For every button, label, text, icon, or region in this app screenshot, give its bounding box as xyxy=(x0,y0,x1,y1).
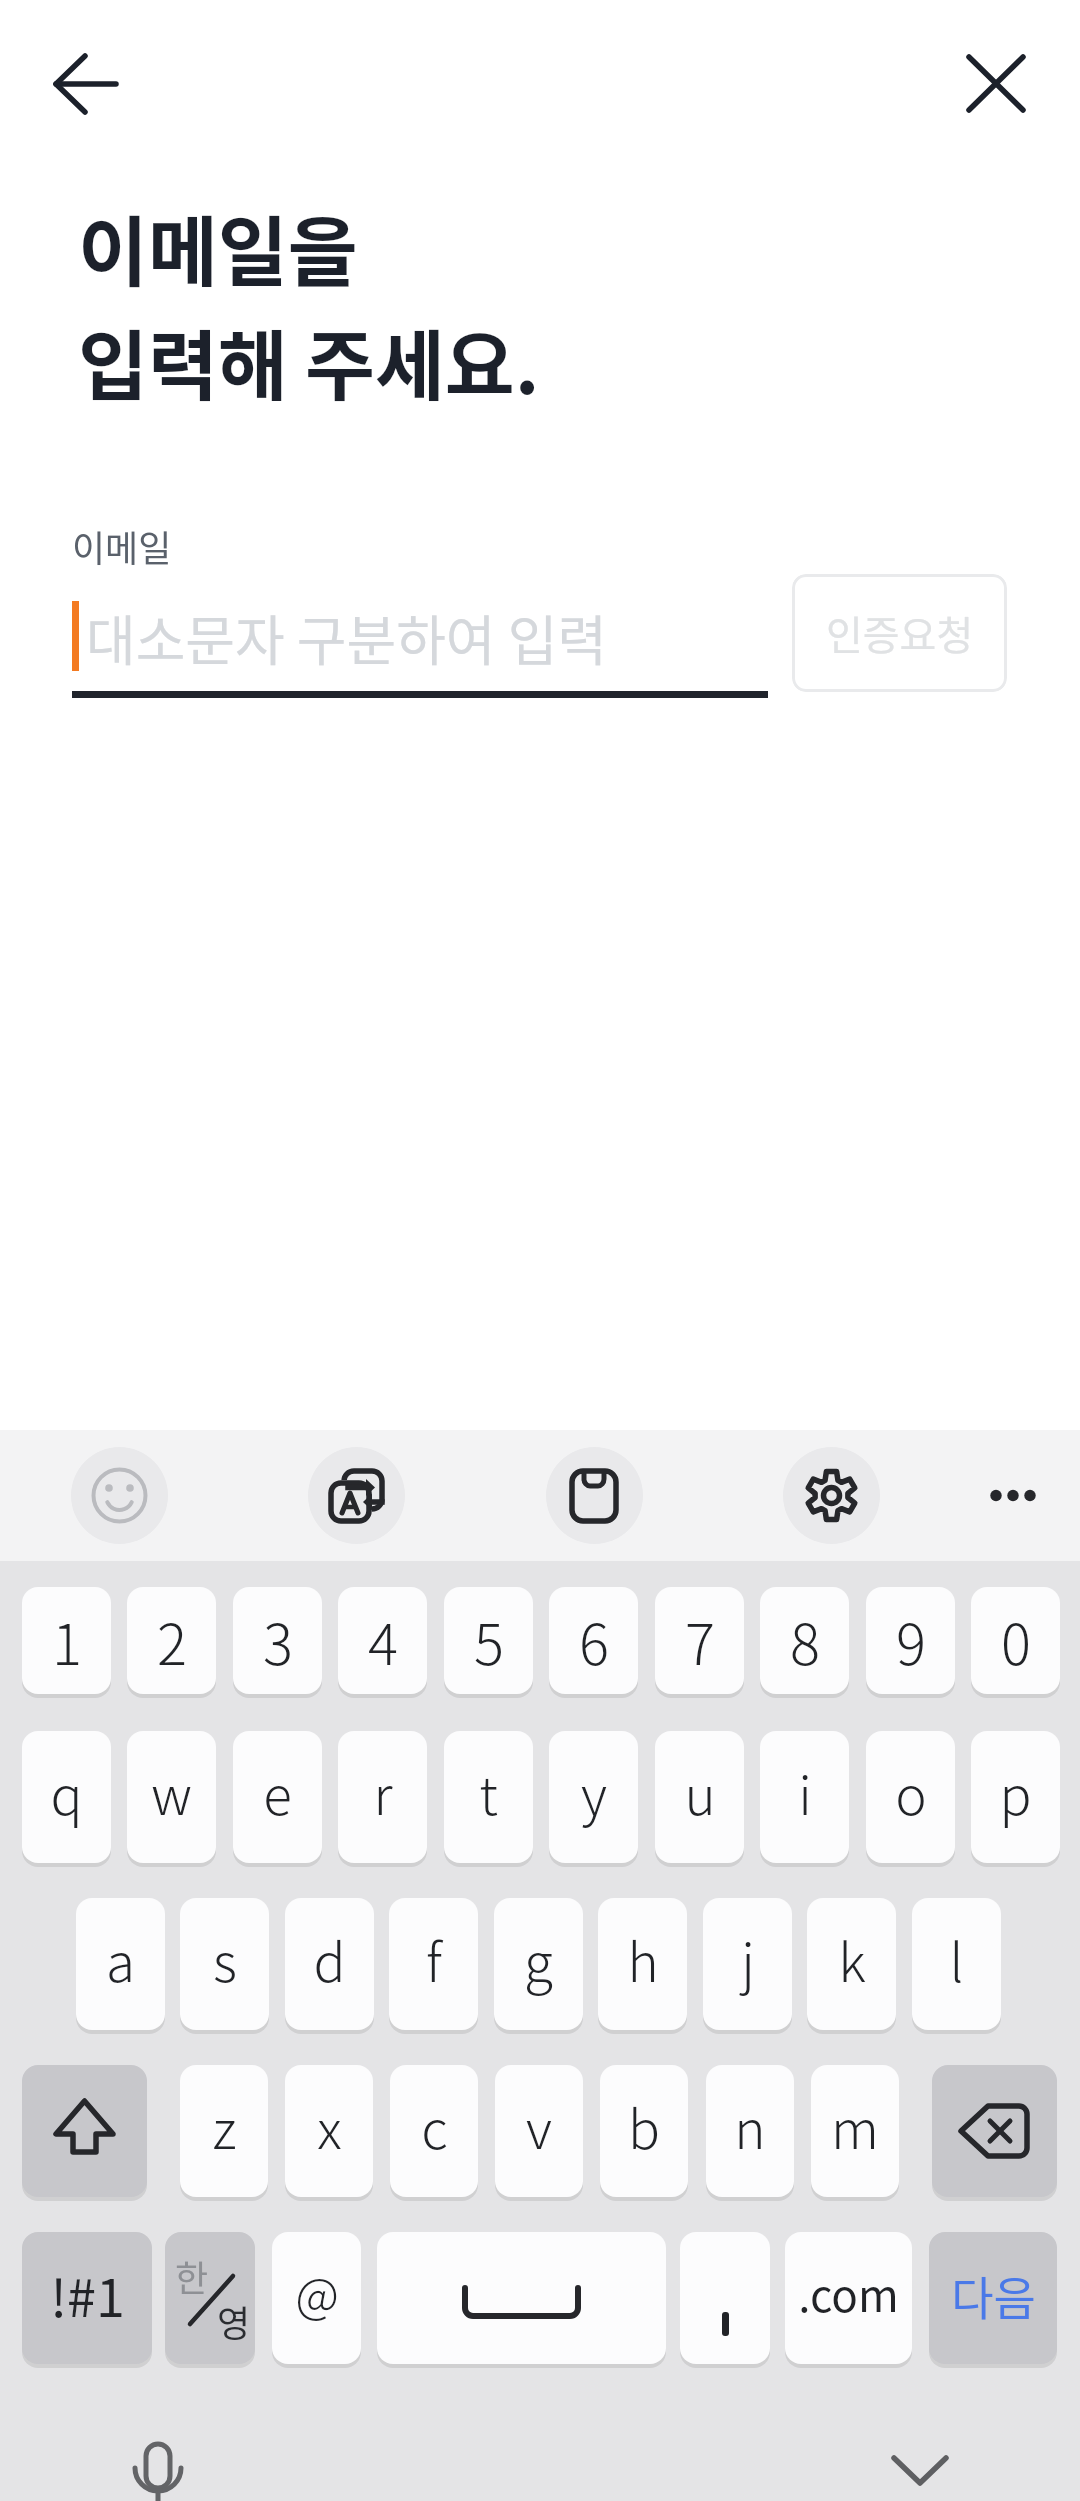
staticText: 8 xyxy=(790,1600,820,1681)
button[interactable]: x xyxy=(285,2065,373,2197)
button[interactable]: 5 xyxy=(444,1587,533,1694)
staticText: o xyxy=(895,1754,927,1831)
button[interactable]: b xyxy=(600,2065,688,2197)
button[interactable]: !#1 xyxy=(22,2232,152,2364)
button[interactable]: v xyxy=(495,2065,583,2197)
staticText: k xyxy=(838,1921,866,1998)
staticText: p xyxy=(999,1754,1032,1831)
button[interactable]: q xyxy=(22,1731,111,1863)
button[interactable]: j xyxy=(703,1898,792,2030)
button[interactable] xyxy=(120,2432,196,2501)
staticText: c xyxy=(421,2088,448,2165)
button[interactable]: o xyxy=(866,1731,955,1863)
button[interactable]: p xyxy=(971,1731,1060,1863)
staticText: n xyxy=(734,2088,766,2165)
staticText: w xyxy=(151,1754,192,1831)
button[interactable] xyxy=(880,2432,960,2501)
button[interactable] xyxy=(38,44,130,128)
staticText: x xyxy=(317,2088,342,2165)
staticText: 영 xyxy=(217,2295,251,2347)
staticText: t xyxy=(479,1754,498,1831)
button[interactable] xyxy=(546,1447,643,1544)
staticText: 대소문자 구분하여 입력 xyxy=(86,598,607,676)
button[interactable]: 4 xyxy=(338,1587,427,1694)
staticText: u xyxy=(684,1754,716,1831)
button[interactable] xyxy=(932,2065,1057,2197)
button[interactable]: 다음 xyxy=(929,2232,1057,2364)
button[interactable]: @ xyxy=(272,2232,361,2364)
button[interactable] xyxy=(22,2065,147,2197)
button[interactable]: l xyxy=(912,1898,1001,2030)
staticText: 이메일을 입력해 주세요. xyxy=(78,192,540,415)
staticText: 7 xyxy=(685,1600,715,1681)
staticText: s xyxy=(213,1921,237,1998)
staticText: 이메일 xyxy=(72,520,172,572)
staticText: 4 xyxy=(368,1600,398,1681)
staticText: y xyxy=(581,1754,607,1831)
staticText: 6 xyxy=(579,1600,609,1681)
staticText: .com xyxy=(798,2261,899,2325)
staticText: f xyxy=(426,1921,442,1998)
button[interactable] xyxy=(377,2232,666,2364)
button[interactable]: 8 xyxy=(760,1587,849,1694)
staticText: 0 xyxy=(1001,1600,1031,1681)
staticText: q xyxy=(50,1754,83,1831)
button[interactable]: 6 xyxy=(549,1587,638,1694)
button[interactable]: a xyxy=(76,1898,165,2030)
staticText: h xyxy=(627,1921,659,1998)
staticText: 인증요청 xyxy=(826,604,974,662)
button[interactable]: h xyxy=(598,1898,687,2030)
button[interactable] xyxy=(952,44,1042,128)
button[interactable]: z xyxy=(180,2065,268,2197)
button[interactable] xyxy=(71,1447,168,1544)
button[interactable]: 3 xyxy=(233,1587,322,1694)
button[interactable]: g xyxy=(494,1898,583,2030)
staticText: g xyxy=(524,1921,553,1998)
button[interactable]: r xyxy=(338,1731,427,1863)
button[interactable] xyxy=(966,1447,1063,1544)
button[interactable]: k xyxy=(807,1898,896,2030)
button[interactable]: e xyxy=(233,1731,322,1863)
button[interactable]: 7 xyxy=(655,1587,744,1694)
button[interactable] xyxy=(308,1447,405,1544)
staticText: l xyxy=(949,1921,964,1998)
button[interactable]: i xyxy=(760,1731,849,1863)
button[interactable]: c xyxy=(390,2065,478,2197)
staticText: j xyxy=(741,1921,755,1998)
staticText: 1 xyxy=(52,1600,82,1681)
button[interactable]: 9 xyxy=(866,1587,955,1694)
staticText: v xyxy=(526,2088,552,2165)
button[interactable] xyxy=(783,1447,880,1544)
staticText: 5 xyxy=(474,1600,504,1681)
button[interactable]: m xyxy=(811,2065,899,2197)
button[interactable]: .com xyxy=(785,2232,912,2364)
staticText: 다음 xyxy=(951,2262,1036,2329)
button[interactable]: u xyxy=(655,1731,744,1863)
button[interactable]: y xyxy=(549,1731,638,1863)
button[interactable]: d xyxy=(285,1898,374,2030)
staticText: a xyxy=(106,1921,135,1998)
button[interactable]: 2 xyxy=(127,1587,216,1694)
staticText: 3 xyxy=(263,1600,293,1681)
button[interactable]: 인증요청 xyxy=(792,574,1007,692)
button[interactable]: 1 xyxy=(22,1587,111,1694)
button[interactable]: f xyxy=(389,1898,478,2030)
button[interactable]: 0 xyxy=(971,1587,1060,1694)
button[interactable]: t xyxy=(444,1731,533,1863)
staticText: !#1 xyxy=(50,2257,125,2332)
button[interactable]: s xyxy=(180,1898,269,2030)
staticText: m xyxy=(831,2088,879,2165)
staticText: b xyxy=(628,2088,660,2165)
button[interactable]: w xyxy=(127,1731,216,1863)
button[interactable]: n xyxy=(706,2065,794,2197)
staticText: d xyxy=(313,1921,346,1998)
staticText: i xyxy=(798,1754,812,1831)
staticText: 2 xyxy=(157,1600,187,1681)
staticText: 9 xyxy=(896,1600,926,1681)
button[interactable]: 한 xyxy=(165,2232,255,2364)
staticText: e xyxy=(263,1754,292,1831)
staticText: @ xyxy=(295,2257,339,2327)
staticText: z xyxy=(212,2088,237,2165)
button[interactable] xyxy=(680,2232,770,2364)
staticText: 한 xyxy=(175,2250,209,2302)
